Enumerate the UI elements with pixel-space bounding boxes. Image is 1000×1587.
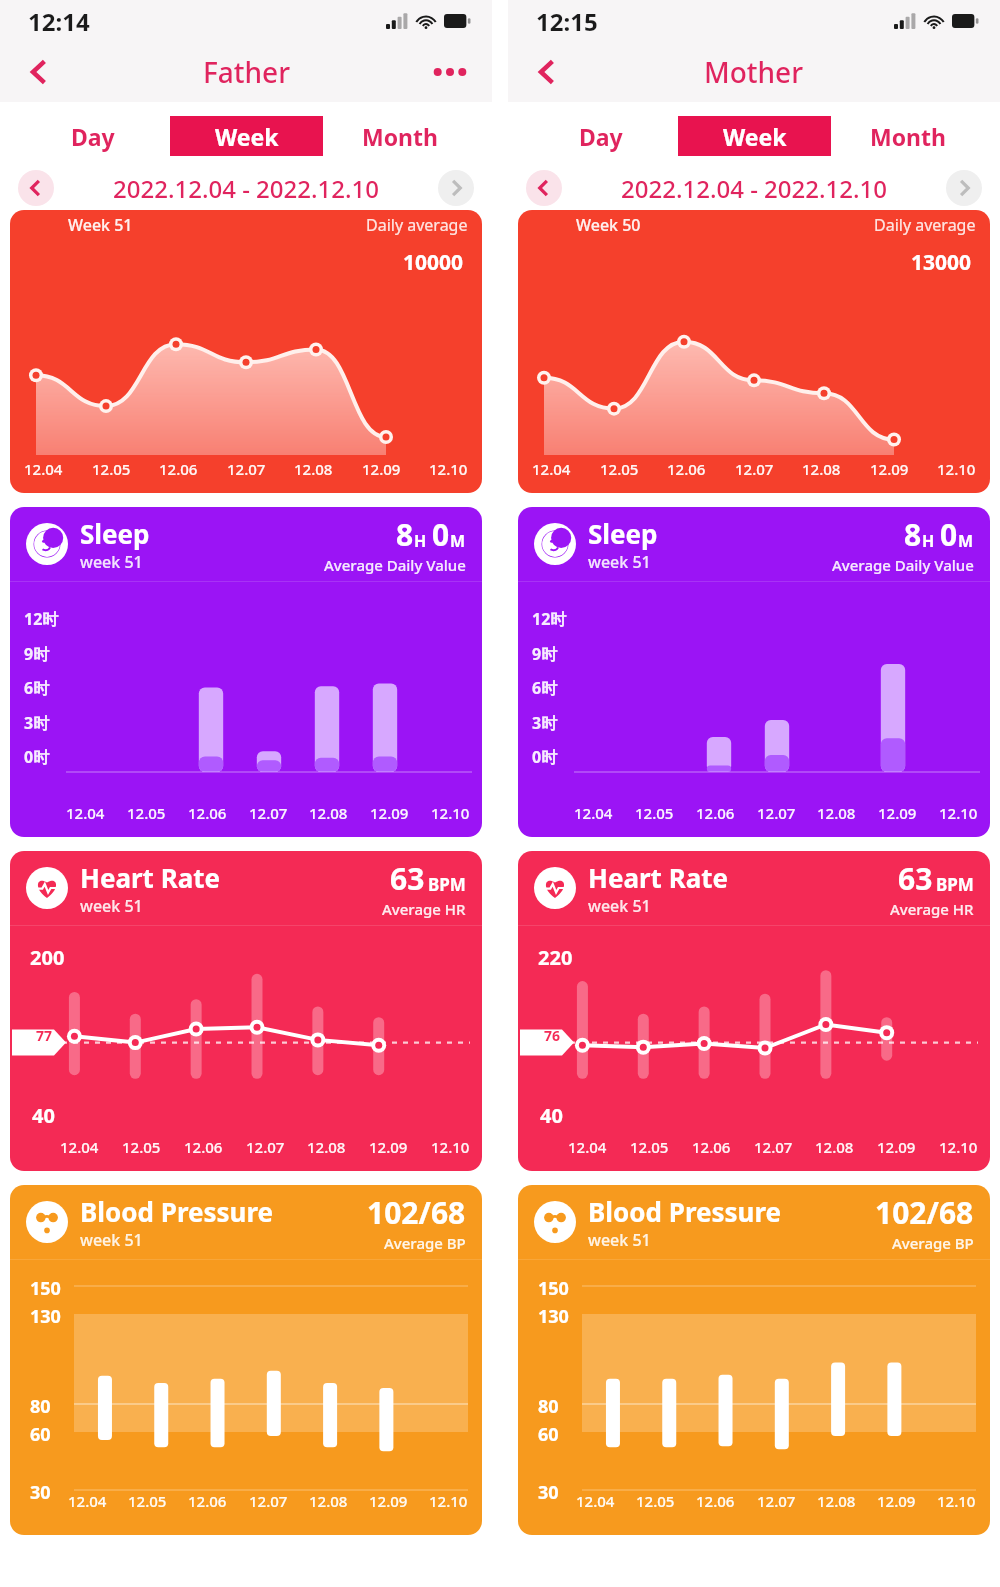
staticText: 12.08 <box>817 803 856 823</box>
staticText: 12.07 <box>757 1491 796 1511</box>
staticText: 12.05 <box>636 1491 675 1511</box>
button[interactable]: Sleep <box>518 507 990 837</box>
staticText: 12.06 <box>696 1491 735 1511</box>
staticText: 12.06 <box>184 1137 223 1157</box>
button[interactable]: Day <box>16 116 170 156</box>
staticText: 220 <box>538 944 573 971</box>
staticText: 0时 <box>24 746 50 768</box>
button[interactable]: Previous week <box>18 170 54 206</box>
staticText: 12.04 <box>60 1137 99 1157</box>
staticText: 2022.12.04 - 2022.12.10 <box>54 172 438 205</box>
button[interactable]: Back <box>18 50 62 94</box>
button[interactable]: Week <box>170 116 323 156</box>
staticText: 12:14 <box>28 5 90 38</box>
staticText: 12.08 <box>307 1137 346 1157</box>
staticText: M <box>450 530 466 552</box>
button[interactable]: Heart Rate <box>518 851 990 1171</box>
button[interactable]: Heart Rate <box>10 851 482 1171</box>
staticText: 0 <box>432 514 450 555</box>
button[interactable]: More options <box>428 50 472 94</box>
staticText: 130 <box>30 1304 61 1329</box>
staticText: 60 <box>30 1422 51 1447</box>
staticText: Week <box>723 121 787 152</box>
staticText: 12.07 <box>227 459 266 479</box>
button[interactable]: Month <box>831 116 984 156</box>
staticText: 12.09 <box>369 1491 408 1511</box>
staticText: 9时 <box>532 643 558 665</box>
staticText: 12.05 <box>128 1491 167 1511</box>
staticText: 12.04 <box>574 803 613 823</box>
staticText: Average BP <box>384 1233 466 1253</box>
staticText: 12.10 <box>431 803 470 823</box>
staticText: 12.04 <box>24 459 63 479</box>
staticText: 63 <box>898 858 933 899</box>
button[interactable]: Month <box>323 116 476 156</box>
staticText: 0时 <box>532 746 558 768</box>
staticText: M <box>958 530 974 552</box>
staticText: 12.04 <box>68 1491 107 1511</box>
staticText: 12.10 <box>429 1491 468 1511</box>
staticText: Average HR <box>890 899 974 919</box>
staticText: 12时 <box>532 608 567 630</box>
staticText: 80 <box>30 1394 51 1419</box>
staticText: 12.07 <box>249 1491 288 1511</box>
staticText: Average Daily Value <box>324 555 466 575</box>
staticText: 12.10 <box>937 1491 976 1511</box>
staticText: 12.04 <box>568 1137 607 1157</box>
button[interactable]: Blood Pressure <box>518 1185 990 1535</box>
staticText: 12.07 <box>249 803 288 823</box>
staticText: 12.06 <box>692 1137 731 1157</box>
staticText: 12.09 <box>369 1137 408 1157</box>
staticText: Blood Pressure <box>588 1194 782 1229</box>
staticText: Week <box>215 121 279 152</box>
staticText: 80 <box>538 1394 559 1419</box>
staticText: 12.04 <box>532 459 571 479</box>
staticText: 12.05 <box>122 1137 161 1157</box>
button[interactable]: Next week <box>438 170 474 206</box>
button[interactable]: Week 50 <box>518 210 990 493</box>
staticText: 0 <box>940 514 958 555</box>
staticText: 12.09 <box>877 1491 916 1511</box>
staticText: 12.05 <box>92 459 131 479</box>
button[interactable]: Sleep <box>10 507 482 837</box>
staticText: 12.04 <box>66 803 105 823</box>
staticText: 12.10 <box>429 459 468 479</box>
staticText: 12.09 <box>370 803 409 823</box>
staticText: 12.04 <box>576 1491 615 1511</box>
staticText: H <box>922 530 935 552</box>
staticText: Day <box>579 121 623 152</box>
staticText: 12时 <box>24 608 59 630</box>
staticText: week 51 <box>80 1229 143 1251</box>
staticText: 12.06 <box>667 459 706 479</box>
staticText: Week 51 <box>68 214 133 236</box>
staticText: 9时 <box>24 643 50 665</box>
staticText: 12.08 <box>309 803 348 823</box>
staticText: 12.05 <box>630 1137 669 1157</box>
button[interactable]: Next week <box>946 170 982 206</box>
staticText: Daily average <box>366 214 468 236</box>
staticText: 12.10 <box>939 803 978 823</box>
staticText: 12.05 <box>127 803 166 823</box>
staticText: 8 <box>904 514 922 555</box>
button[interactable]: Back <box>526 50 570 94</box>
button[interactable]: Day <box>524 116 678 156</box>
staticText: 12.07 <box>757 803 796 823</box>
staticText: 12.07 <box>735 459 774 479</box>
button[interactable]: Week <box>678 116 831 156</box>
staticText: 60 <box>538 1422 559 1447</box>
staticText: week 51 <box>588 1229 651 1251</box>
staticText: Heart Rate <box>80 860 221 895</box>
button[interactable]: Week 51 <box>10 210 482 493</box>
staticText: 12.08 <box>802 459 841 479</box>
staticText: 12.05 <box>635 803 674 823</box>
staticText: 12:15 <box>536 5 598 38</box>
staticText: 200 <box>30 944 65 971</box>
staticText: 130 <box>538 1304 569 1329</box>
staticText: Sleep <box>80 516 150 551</box>
staticText: 6时 <box>532 677 558 699</box>
staticText: BPM <box>428 873 466 896</box>
staticText: 12.08 <box>815 1137 854 1157</box>
staticText: Father <box>203 53 290 91</box>
button[interactable]: Blood Pressure <box>10 1185 482 1535</box>
button[interactable]: Previous week <box>526 170 562 206</box>
